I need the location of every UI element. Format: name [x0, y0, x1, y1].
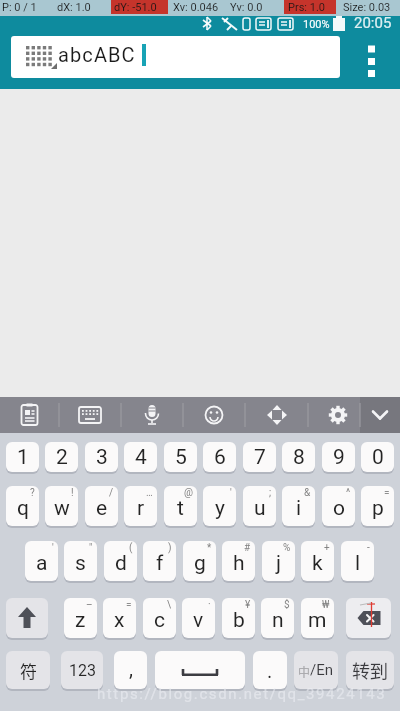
button[interactable]: abcABC	[11, 36, 340, 78]
staticText: e	[96, 496, 108, 521]
staticText: 8	[293, 445, 305, 470]
button[interactable]: 6	[203, 442, 236, 472]
button[interactable]	[360, 397, 400, 433]
button[interactable]: .	[253, 651, 287, 689]
button[interactable]: q	[6, 486, 39, 526]
staticText: abcABC	[58, 43, 136, 66]
button[interactable]: c	[143, 598, 176, 638]
staticText: .	[267, 659, 273, 682]
button[interactable]: e	[85, 486, 118, 526]
staticText: n	[272, 608, 284, 633]
button[interactable]: a	[25, 541, 58, 581]
staticText: …	[146, 487, 153, 499]
staticText: j	[276, 551, 282, 576]
button[interactable]: 转到	[346, 651, 394, 689]
staticText: 中	[298, 663, 311, 680]
button[interactable]	[121, 397, 183, 433]
button[interactable]	[0, 397, 59, 433]
button[interactable]: 2	[45, 442, 78, 472]
staticText: v	[193, 608, 204, 633]
button[interactable]: w	[45, 486, 78, 526]
button[interactable]: t	[164, 486, 197, 526]
button[interactable]	[245, 397, 308, 433]
staticText: –	[86, 599, 93, 611]
button[interactable]: x	[103, 598, 136, 638]
button[interactable]	[294, 651, 338, 689]
staticText: Prs: 1.0	[288, 1, 326, 14]
button[interactable]	[59, 397, 121, 433]
staticText: =	[384, 487, 390, 499]
staticText: &	[304, 487, 311, 499]
button[interactable]: 123	[61, 651, 103, 689]
button[interactable]: 4	[124, 442, 157, 472]
button[interactable]: z	[64, 598, 97, 638]
staticText: https://blog.csdn.net/qq_39424143	[97, 685, 387, 703]
staticText: (	[129, 542, 133, 554]
button[interactable]: g	[183, 541, 216, 581]
button[interactable]	[6, 598, 48, 638]
staticText: 7	[254, 445, 266, 470]
button[interactable]: d	[104, 541, 137, 581]
staticText: 转到	[352, 657, 388, 683]
staticText: p	[372, 496, 384, 521]
staticText: @	[184, 487, 193, 499]
button[interactable]: 3	[85, 442, 118, 472]
staticText: 123	[69, 661, 96, 680]
button[interactable]	[155, 651, 245, 689]
staticText: ¥	[245, 599, 251, 611]
button[interactable]: k	[301, 541, 334, 581]
button[interactable]	[308, 397, 360, 433]
staticText: c	[154, 608, 165, 633]
staticText: !	[71, 487, 74, 499]
button[interactable]: r	[124, 486, 157, 526]
staticText: $	[284, 599, 290, 611]
button[interactable]: h	[222, 541, 255, 581]
staticText: '	[230, 487, 232, 499]
button[interactable]: 1	[6, 442, 39, 472]
button[interactable]	[360, 40, 390, 80]
staticText: 9	[333, 445, 345, 470]
staticText: ₩	[322, 599, 330, 611]
staticText: h	[233, 551, 245, 576]
button[interactable]: 8	[282, 442, 315, 472]
button[interactable]: m	[301, 598, 334, 638]
button[interactable]: f	[143, 541, 176, 581]
staticText: r	[137, 496, 145, 521]
staticText: Yv: 0.0	[230, 1, 263, 14]
staticText: +	[324, 542, 330, 554]
button[interactable]	[183, 397, 245, 433]
staticText: /En	[310, 661, 333, 679]
staticText: 符	[20, 658, 37, 683]
button[interactable]: i	[282, 486, 315, 526]
button[interactable]	[346, 598, 391, 638]
staticText: P: 0 / 1	[2, 1, 37, 14]
button[interactable]: v	[182, 598, 215, 638]
button[interactable]: ,	[114, 651, 147, 689]
staticText: *	[207, 542, 212, 554]
button[interactable]: s	[64, 541, 97, 581]
button[interactable]: n	[261, 598, 294, 638]
staticText: d	[115, 551, 127, 576]
staticText: ,	[129, 657, 133, 680]
staticText: f	[156, 551, 164, 576]
button[interactable]: 0	[361, 442, 394, 472]
button[interactable]: y	[203, 486, 236, 526]
staticText: 1	[17, 445, 29, 470]
staticText: \	[167, 599, 172, 611]
button[interactable]: 符	[6, 651, 50, 689]
button[interactable]: 5	[164, 442, 197, 472]
button[interactable]: 7	[243, 442, 276, 472]
button[interactable]: j	[262, 541, 295, 581]
button[interactable]: u	[243, 486, 276, 526]
button[interactable]: b	[222, 598, 255, 638]
staticText: 5	[175, 445, 187, 470]
staticText: o	[333, 496, 345, 521]
staticText: 6	[214, 445, 226, 470]
staticText: )	[168, 542, 172, 554]
button[interactable]: l	[341, 541, 374, 581]
button[interactable]: p	[361, 486, 394, 526]
staticText: Xv: 0.046	[173, 1, 219, 14]
button[interactable]: o	[322, 486, 355, 526]
button[interactable]: 9	[322, 442, 355, 472]
staticText: m	[308, 608, 327, 633]
